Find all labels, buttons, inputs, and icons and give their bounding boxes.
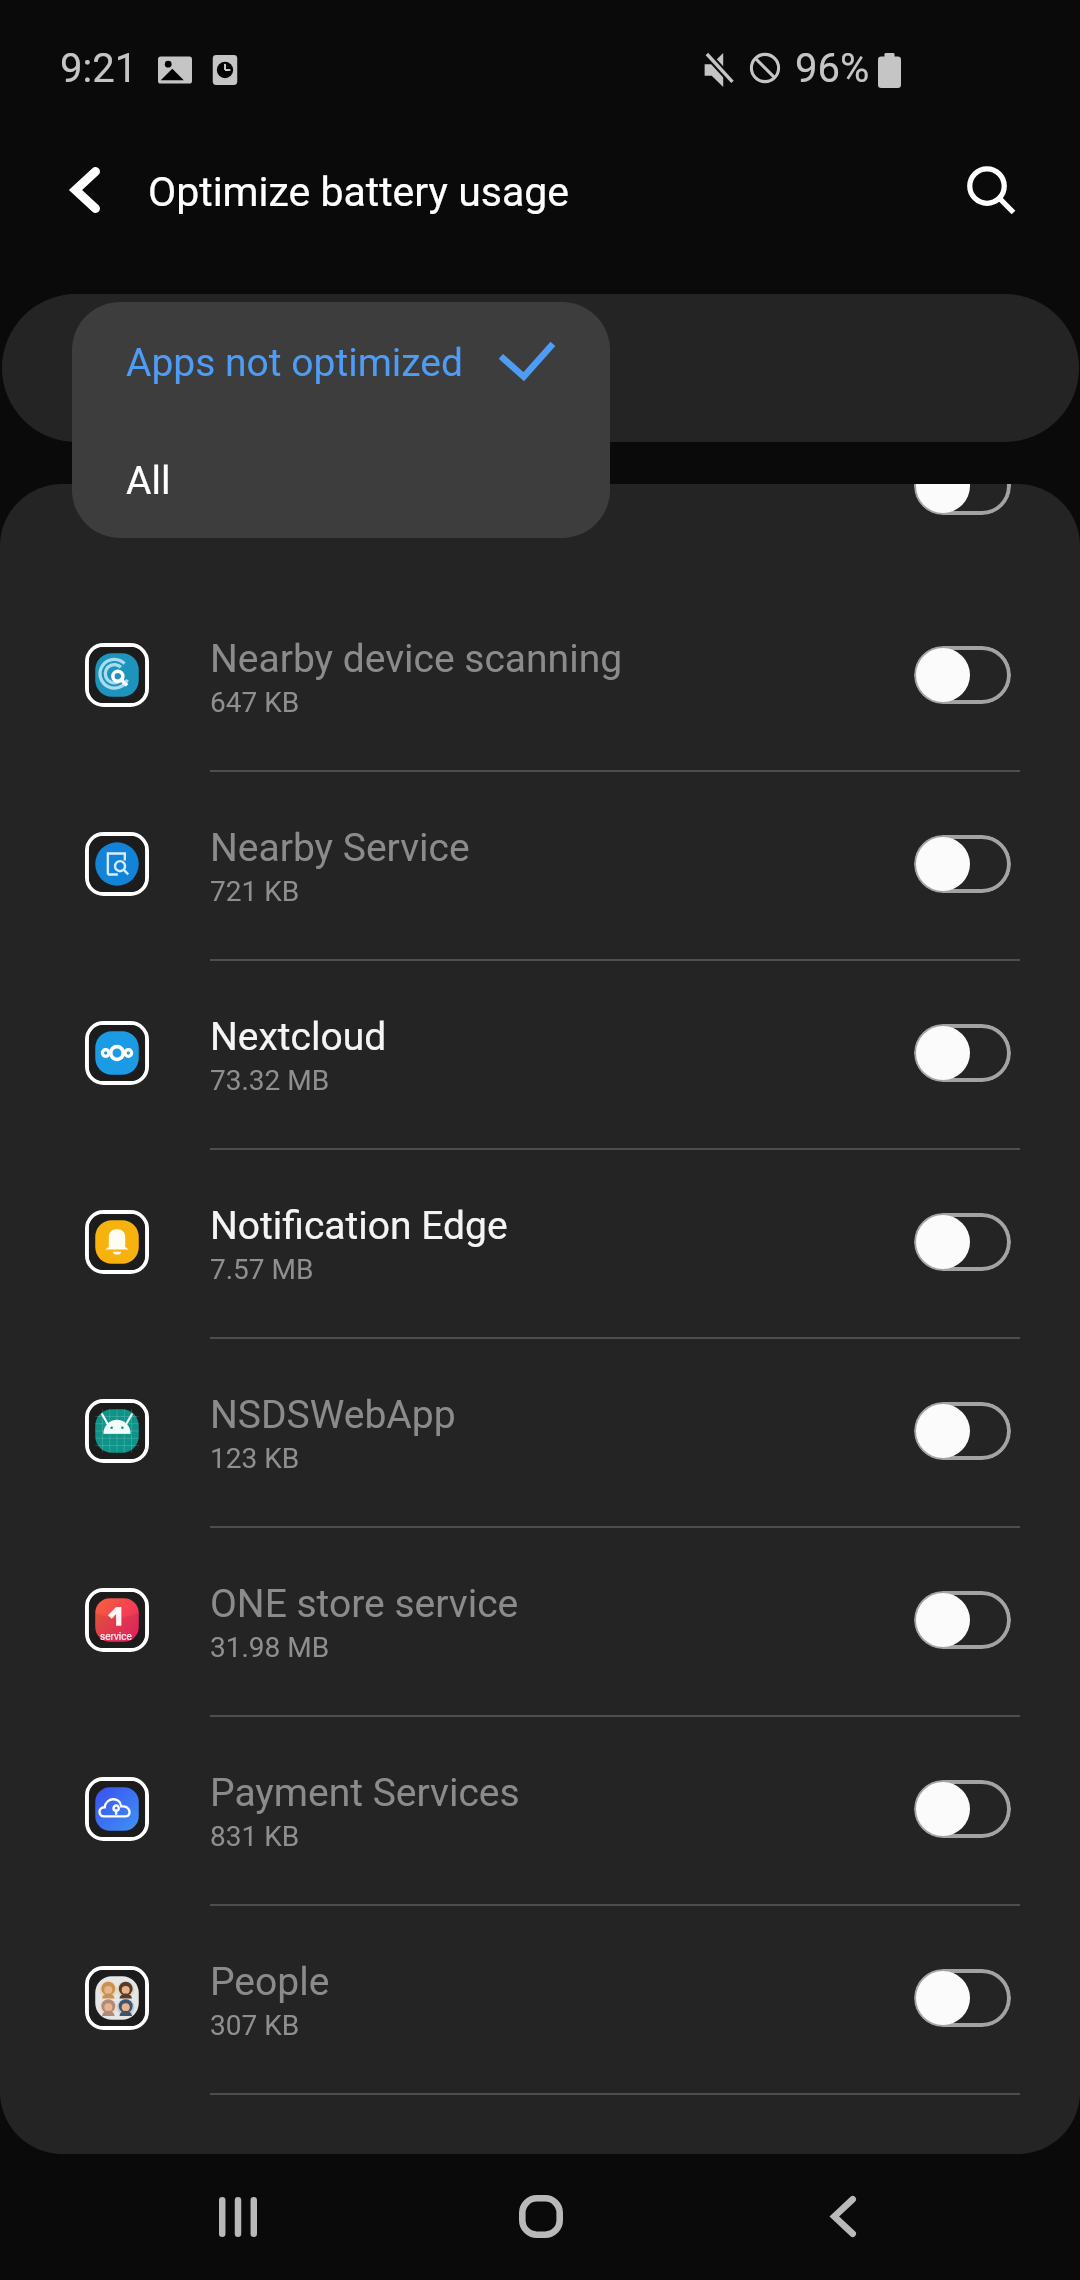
staticText: 721 KB: [210, 875, 300, 908]
button[interactable]: People: [0, 1904, 1080, 2093]
staticText: 647 KB: [210, 686, 300, 719]
button[interactable]: Home: [466, 2157, 616, 2280]
staticText: Nearby Service: [210, 825, 470, 871]
button[interactable]: Toggle People: [914, 1969, 1011, 2027]
staticText: 9:21: [60, 45, 138, 92]
staticText: 831 KB: [210, 1820, 300, 1853]
button[interactable]: service: [0, 1526, 1080, 1715]
button[interactable]: Toggle Payment Services: [914, 1780, 1011, 1838]
staticText: Apps not optimized: [126, 340, 464, 386]
staticText: 31.98 MB: [210, 1631, 330, 1664]
staticText: 307 KB: [210, 2009, 300, 2042]
staticText: Optimize battery usage: [148, 168, 570, 216]
button[interactable]: Nearby device scanning: [0, 581, 1080, 770]
button[interactable]: Nextcloud: [0, 959, 1080, 1148]
staticText: 123 KB: [210, 1442, 300, 1475]
button[interactable]: Toggle app: [914, 484, 1011, 515]
button[interactable]: Toggle NSDSWebApp: [914, 1402, 1011, 1460]
staticText: Nearby device scanning: [210, 636, 623, 682]
button[interactable]: Recent apps: [163, 2157, 313, 2280]
staticText: Nextcloud: [210, 1014, 387, 1060]
staticText: 96%: [795, 45, 870, 92]
button[interactable]: Search: [946, 145, 1036, 235]
staticText: 7.57 MB: [210, 1253, 314, 1286]
button[interactable]: Notification Edge: [0, 1148, 1080, 1337]
button[interactable]: Toggle Nearby Service: [914, 835, 1011, 893]
button[interactable]: Nearby Service: [0, 770, 1080, 959]
staticText: People: [210, 1959, 330, 2005]
staticText: ONE store service: [210, 1581, 519, 1627]
button[interactable]: Toggle Nearby device scanning: [914, 646, 1011, 704]
button[interactable]: Navigate up: [40, 147, 126, 233]
staticText: service: [100, 1631, 132, 1643]
button[interactable]: NSDSWebApp: [0, 1337, 1080, 1526]
button[interactable]: Payment Services: [0, 1715, 1080, 1904]
button[interactable]: Filter: Apps not optimized: [2, 294, 1079, 442]
button[interactable]: Back: [768, 2157, 918, 2280]
staticText: Notification Edge: [210, 1203, 508, 1249]
button[interactable]: Apps not optimized: [72, 302, 610, 420]
staticText: NSDSWebApp: [210, 1392, 456, 1438]
button[interactable]: Toggle ONE store service: [914, 1591, 1011, 1649]
staticText: Payment Services: [210, 1770, 520, 1816]
staticText: All: [126, 458, 171, 504]
button[interactable]: Toggle Notification Edge: [914, 1213, 1011, 1271]
button[interactable]: Toggle Nextcloud: [914, 1024, 1011, 1082]
staticText: 73.32 MB: [210, 1064, 330, 1097]
button[interactable]: All: [72, 420, 610, 538]
